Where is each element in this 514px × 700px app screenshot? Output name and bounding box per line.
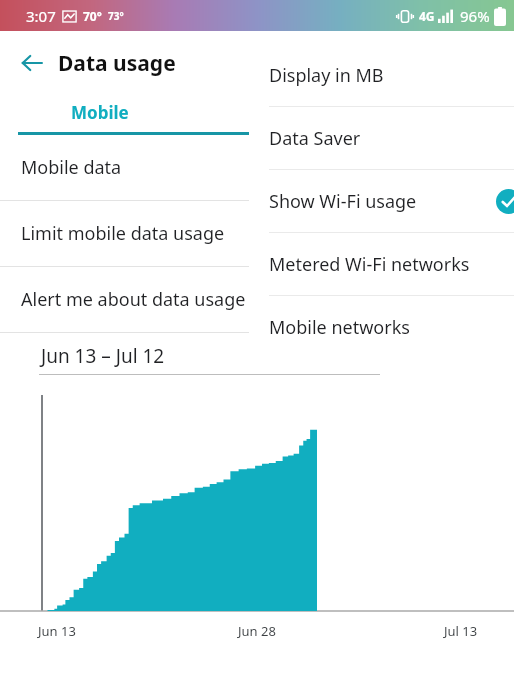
staticText: 73° bbox=[108, 9, 124, 23]
button[interactable]: Mobile data bbox=[0, 135, 514, 200]
button[interactable]: Metered Wi-Fi networks bbox=[249, 233, 514, 295]
staticText: Limit mobile data usage bbox=[21, 221, 225, 246]
staticText: Jun 28 bbox=[238, 622, 276, 640]
staticText: Mobile networks bbox=[269, 315, 410, 340]
button[interactable]: Mobile bbox=[0, 89, 200, 135]
button[interactable]: Show Wi-Fi usage bbox=[249, 170, 514, 232]
staticText: Data usage bbox=[58, 49, 176, 78]
button[interactable]: Alert me about data usage bbox=[0, 267, 514, 332]
staticText: 70° bbox=[83, 8, 102, 24]
staticText: Mobile bbox=[71, 101, 129, 124]
staticText: Jul 13 bbox=[444, 622, 478, 640]
staticText: Show Wi-Fi usage bbox=[269, 189, 417, 214]
staticText: Alert me about data usage bbox=[21, 287, 246, 312]
staticText: Mobile data bbox=[21, 155, 122, 180]
button[interactable]: Limit mobile data usage bbox=[0, 201, 514, 266]
staticText: Display in MB bbox=[269, 63, 384, 88]
staticText: Data Saver bbox=[269, 126, 361, 151]
staticText: 4G bbox=[419, 8, 435, 24]
button[interactable]: Display in MB bbox=[249, 44, 514, 106]
staticText: Jun 13 bbox=[38, 622, 76, 640]
staticText: Jun 13 – Jul 12 bbox=[41, 343, 165, 369]
button[interactable]: Jun 13 – Jul 12 bbox=[0, 333, 380, 379]
button[interactable]: Mobile networks bbox=[249, 296, 514, 358]
button[interactable]: Data Saver bbox=[249, 107, 514, 169]
button[interactable]: Back bbox=[10, 41, 54, 85]
staticText: Metered Wi-Fi networks bbox=[269, 252, 470, 277]
staticText: 3:07 bbox=[26, 6, 56, 26]
staticText: 96% bbox=[460, 6, 490, 26]
